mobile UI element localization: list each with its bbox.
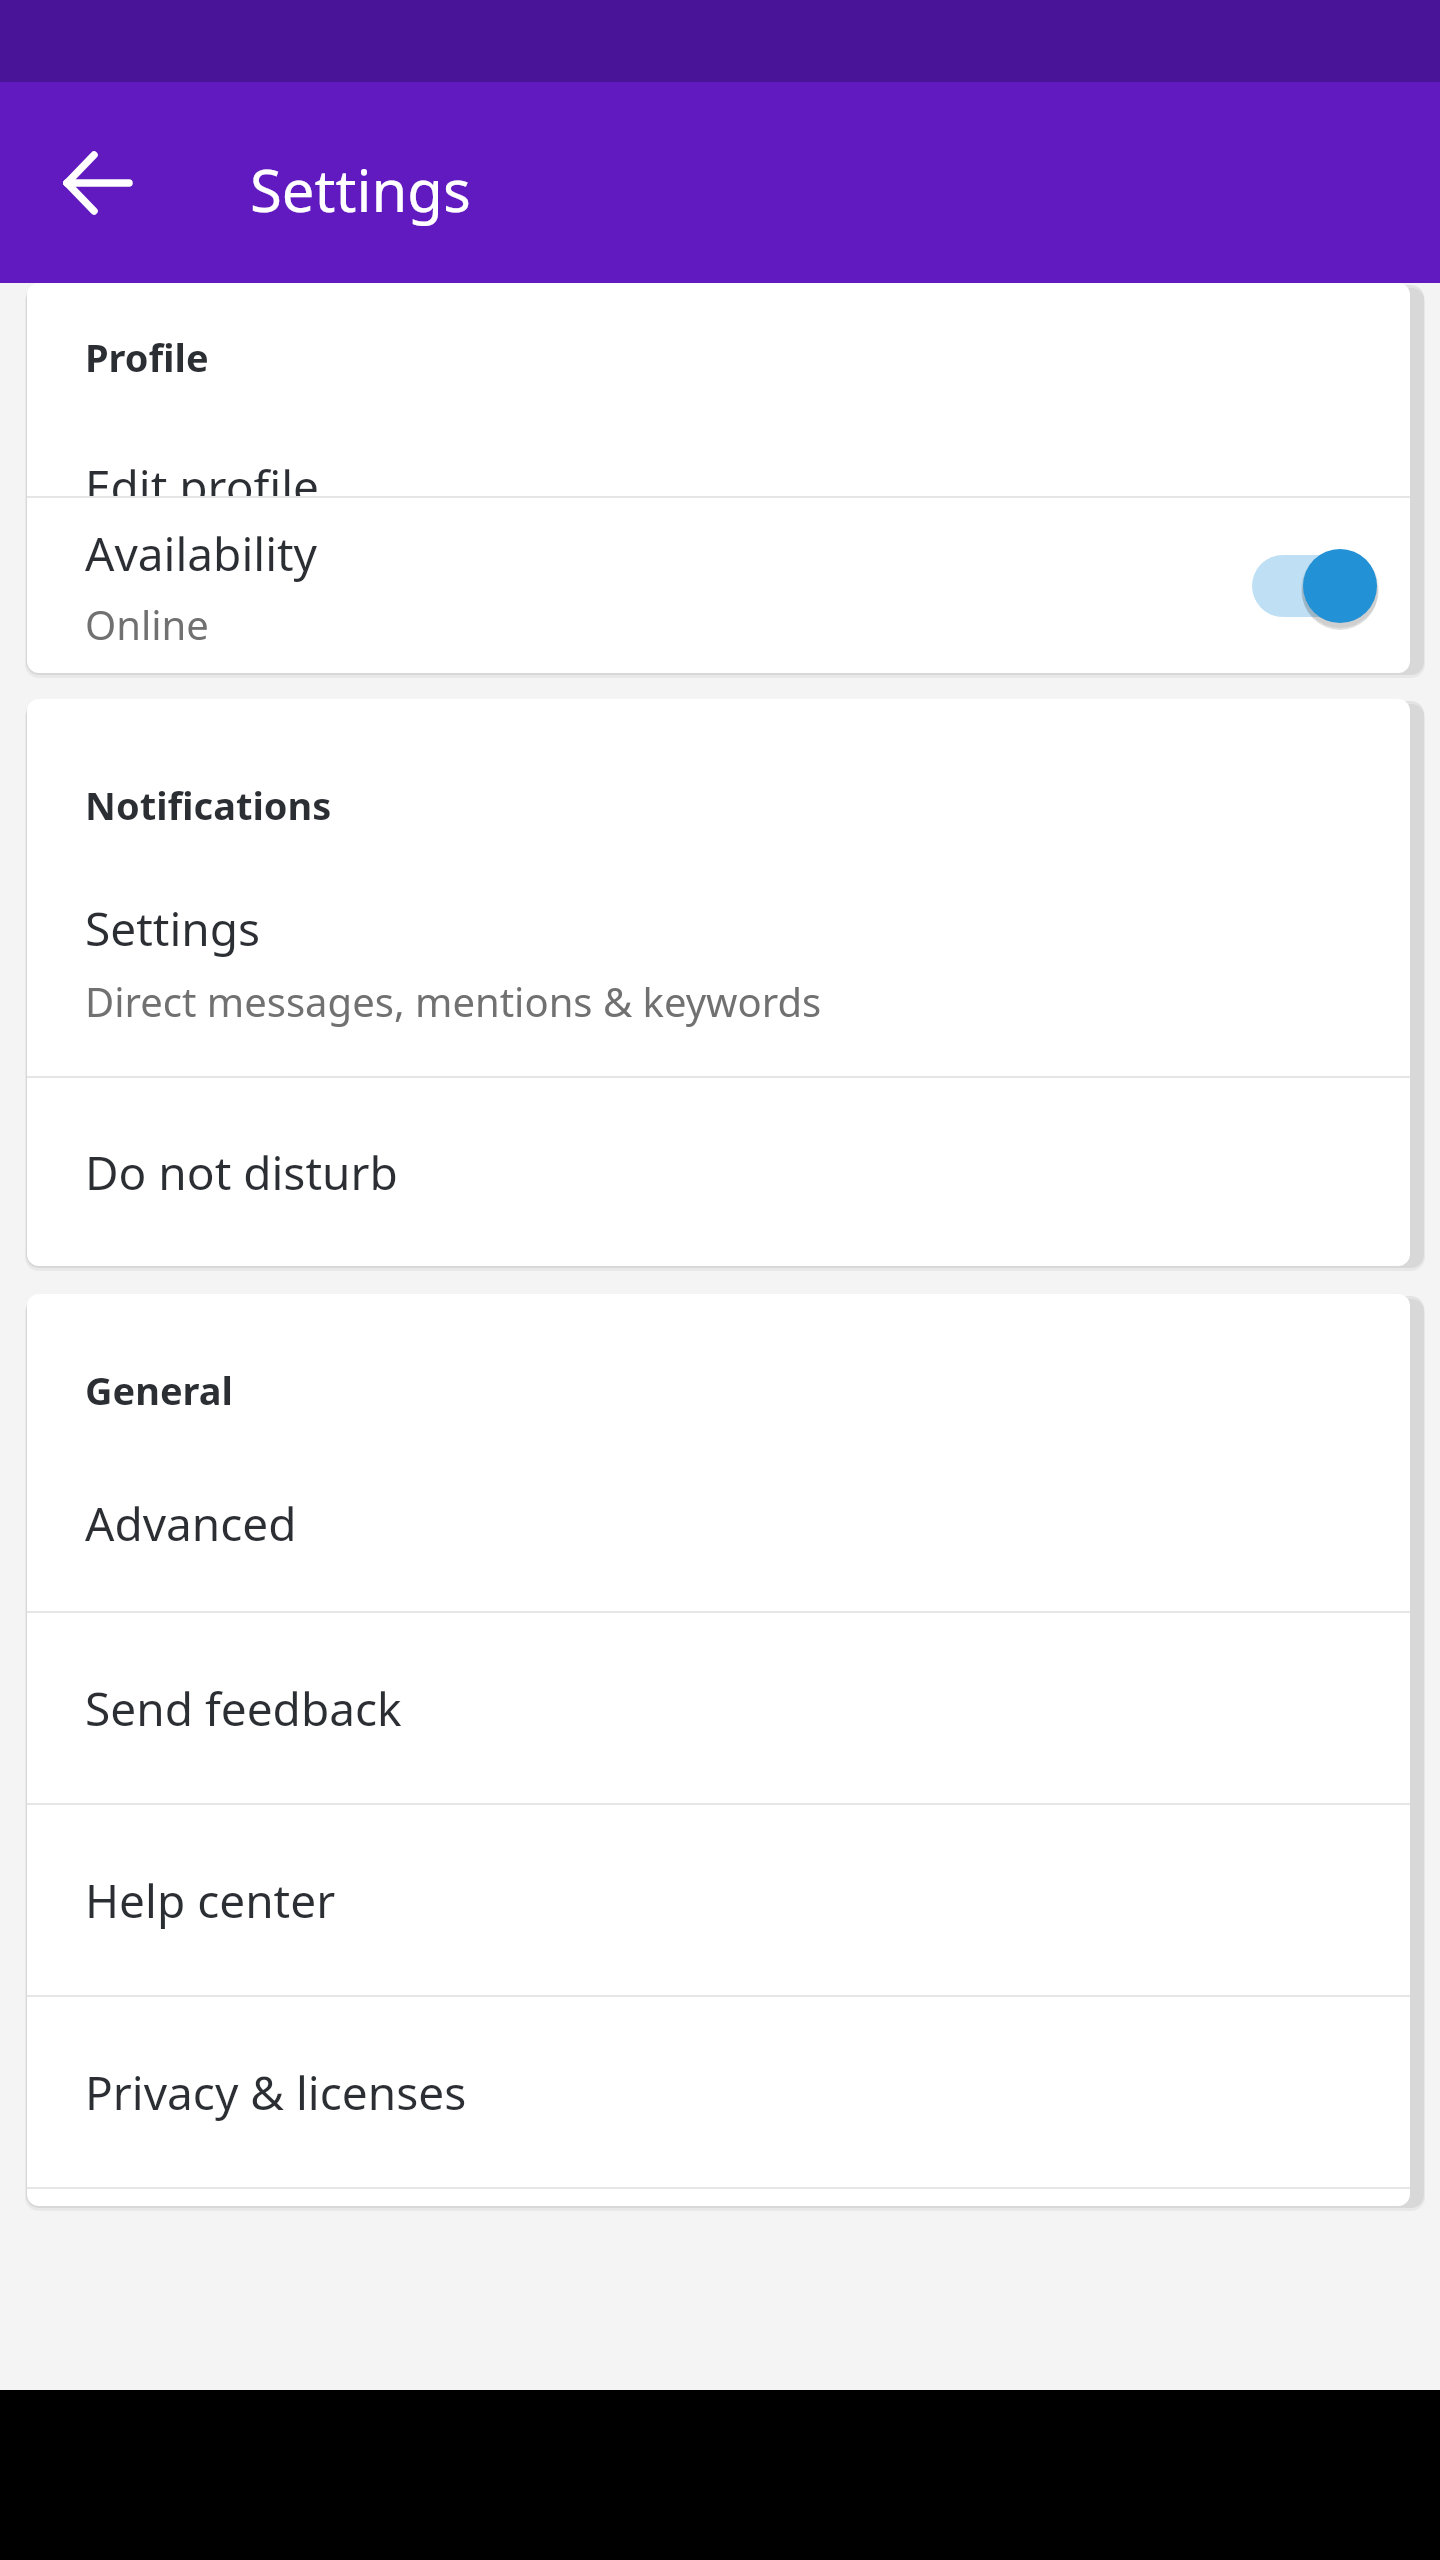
staticText: Settings — [85, 897, 261, 960]
staticText: Profile — [85, 331, 209, 383]
staticText: Edit profile — [85, 455, 320, 496]
staticText: Do not disturb — [85, 1141, 398, 1204]
button[interactable]: Help center — [27, 1805, 1410, 1995]
staticText: Online — [85, 597, 209, 651]
staticText: Send feedback — [85, 1677, 402, 1740]
button[interactable]: Back — [42, 128, 152, 238]
staticText: Advanced — [85, 1492, 297, 1555]
staticText: Availability — [85, 522, 318, 585]
staticText: Direct messages, mentions & keywords — [85, 974, 822, 1028]
staticText: General — [85, 1364, 233, 1416]
button[interactable]: Send feedback — [27, 1613, 1410, 1803]
staticText: Settings — [250, 150, 471, 229]
staticText: Privacy & licenses — [85, 2061, 467, 2124]
button[interactable]: Privacy & licenses — [27, 1997, 1410, 2187]
staticText: Notifications — [85, 779, 332, 831]
button[interactable]: Profile — [27, 283, 1410, 496]
button[interactable]: General — [27, 1294, 1410, 1611]
button[interactable]: Availability — [27, 498, 1410, 673]
button[interactable]: Availability on — [1240, 536, 1390, 636]
button[interactable]: Do not disturb — [27, 1078, 1410, 1266]
staticText: Help center — [85, 1869, 336, 1932]
button[interactable]: Notifications — [27, 699, 1410, 1076]
